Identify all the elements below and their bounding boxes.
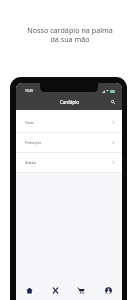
staticText: Pizzas	[25, 121, 34, 125]
staticText: Nosso cardápio na palma da sua mão	[27, 25, 113, 44]
button[interactable]: Bebidas	[16, 153, 122, 173]
staticText: Promoções	[25, 141, 41, 145]
staticText: Bebidas	[25, 161, 37, 165]
staticText: 10:25	[25, 89, 34, 93]
button[interactable]: Pizzas	[16, 113, 122, 133]
staticText: Cardápio	[60, 99, 79, 105]
button[interactable]: Menu	[42, 278, 68, 300]
button[interactable]: Cart	[68, 278, 95, 300]
button[interactable]: Account	[95, 278, 122, 300]
button[interactable]: Search	[108, 97, 118, 107]
button[interactable]: Home	[16, 278, 42, 300]
button[interactable]: Promoções	[16, 133, 122, 153]
